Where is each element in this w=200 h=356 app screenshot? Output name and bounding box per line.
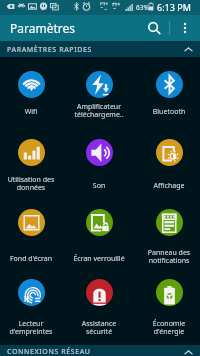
staticText: Paramètres: [10, 20, 75, 36]
staticText: Panneau des notifications: [136, 248, 200, 265]
staticText: 6:13 PM: [157, 1, 191, 13]
staticText: PARAMÈTRES RAPIDES: [7, 45, 92, 55]
button[interactable]: [136, 139, 200, 183]
button[interactable]: Search: [145, 19, 163, 37]
button[interactable]: [136, 209, 200, 253]
button[interactable]: [66, 209, 132, 253]
staticText: 63%: [136, 3, 149, 12]
button[interactable]: CONNEXIONS RÉSEAU: [0, 345, 200, 356]
staticText: Son: [66, 181, 132, 191]
button[interactable]: [66, 71, 132, 115]
staticText: Écran verrouillé: [66, 254, 132, 264]
staticText: CONNEXIONS RÉSEAU: [7, 347, 91, 356]
button[interactable]: [0, 139, 64, 183]
staticText: Wifi: [0, 107, 64, 117]
button[interactable]: More options: [176, 19, 194, 37]
staticText: Lecteur d'empreintes: [0, 319, 64, 336]
button[interactable]: [136, 71, 200, 115]
staticText: Assistance sécurité: [66, 319, 132, 336]
button[interactable]: PARAMÈTRES RAPIDES: [0, 41, 200, 57]
button[interactable]: [136, 279, 200, 323]
staticText: Bluetooth: [136, 107, 200, 117]
staticText: Utilisation des données: [0, 175, 64, 192]
button[interactable]: [66, 279, 132, 323]
staticText: Économie d'énergie: [136, 319, 200, 336]
button[interactable]: [0, 71, 64, 115]
staticText: Affichage: [136, 181, 200, 191]
staticText: Fond d'écran: [0, 254, 64, 264]
staticText: Amplificateur téléchargeme..: [66, 102, 132, 119]
button[interactable]: [0, 209, 64, 253]
button[interactable]: [66, 139, 132, 183]
button[interactable]: [0, 279, 64, 323]
